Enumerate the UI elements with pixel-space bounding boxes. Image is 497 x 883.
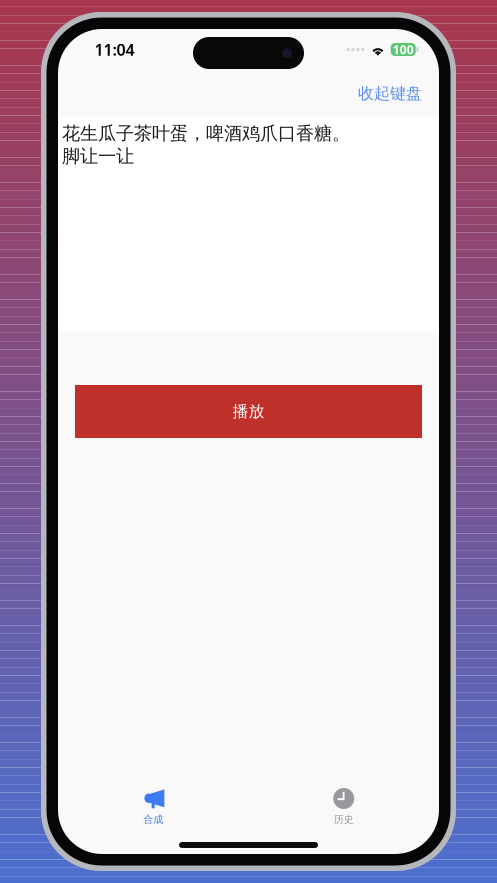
staticText: 合成 — [143, 813, 163, 826]
staticText: 历史 — [334, 813, 354, 826]
staticText: 11:04 — [94, 39, 134, 60]
button[interactable]: 收起键盘 — [341, 73, 439, 114]
button[interactable]: 历史 — [248, 786, 439, 836]
staticText: 收起键盘 — [358, 83, 422, 104]
button[interactable]: 合成 — [58, 786, 248, 836]
button[interactable]: 播放 — [75, 385, 422, 438]
staticText: 100 — [393, 41, 414, 57]
staticText: 播放 — [232, 401, 264, 422]
staticText: 花生瓜子茶叶蛋，啤酒鸡爪口香糖。 脚让一让 — [62, 122, 350, 168]
